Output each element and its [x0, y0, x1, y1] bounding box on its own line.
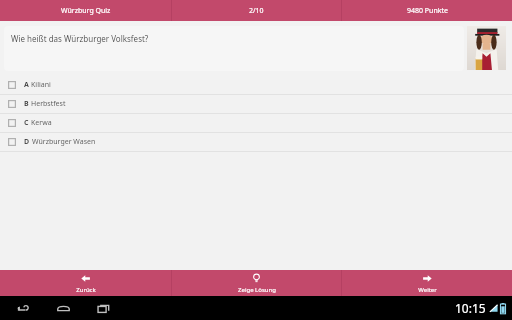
button[interactable]: D	[0, 133, 512, 152]
staticText: A	[24, 80, 29, 90]
button[interactable]: Recent apps	[90, 296, 116, 320]
button[interactable]: Back	[10, 296, 36, 320]
staticText: Würzburg Quiz	[61, 6, 111, 16]
staticText: 10:15	[455, 300, 486, 316]
staticText: Wie heißt das Würzburger Volksfest?	[11, 33, 149, 44]
staticText: Herbstfest	[31, 99, 66, 109]
button[interactable]: B	[0, 95, 512, 114]
staticText: 9480 Punkte	[407, 6, 448, 16]
staticText: Weiter	[418, 286, 437, 294]
button[interactable]: Zurück	[0, 270, 171, 296]
staticText: Kerwa	[31, 118, 52, 128]
staticText: Kiliani	[31, 80, 51, 90]
staticText: Würzburger Wasen	[32, 137, 96, 147]
button[interactable]: Weiter	[342, 270, 512, 296]
staticText: C	[24, 118, 29, 128]
staticText: B	[24, 99, 29, 109]
button[interactable]: Würzburg Quiz	[0, 0, 171, 21]
staticText: Zurück	[76, 286, 96, 294]
button[interactable]: C	[0, 114, 512, 133]
staticText: 2/10	[249, 6, 264, 16]
button[interactable]: Zeige Lösung	[172, 270, 341, 296]
staticText: Zeige Lösung	[238, 286, 276, 294]
button[interactable]: A	[0, 76, 512, 95]
staticText: D	[24, 137, 30, 147]
button[interactable]: Home	[50, 296, 76, 320]
